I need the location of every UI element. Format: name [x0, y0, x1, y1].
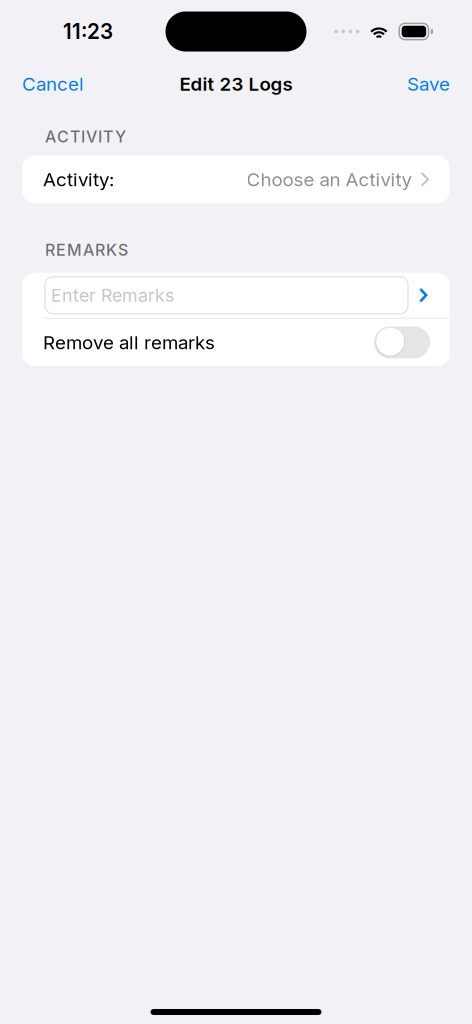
staticText: Remove all remarks: [43, 331, 215, 354]
staticText: Save: [407, 73, 450, 95]
staticText: Choose an Activity: [247, 168, 412, 191]
staticText: Edit 23 Logs: [179, 73, 292, 95]
button[interactable]: Submit remarks: [408, 277, 441, 314]
button[interactable]: Remove all remarks: [22, 319, 450, 366]
staticText: Enter Remarks: [51, 284, 174, 306]
staticText: ACTIVITY: [45, 127, 126, 146]
button[interactable]: Activity:: [22, 155, 450, 203]
staticText: Activity:: [43, 168, 114, 191]
button[interactable]: Save: [407, 65, 450, 103]
button[interactable]: Cancel: [22, 65, 84, 103]
staticText: 11:23: [63, 19, 113, 44]
staticText: REMARKS: [45, 240, 128, 260]
staticText: Cancel: [22, 73, 84, 95]
